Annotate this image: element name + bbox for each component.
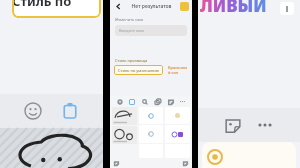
staticText: Стиль по умолчанию — [118, 68, 159, 73]
button[interactable]: Packs — [152, 96, 163, 107]
button[interactable]: Стиль по умолчанию — [118, 65, 159, 75]
button[interactable]: Back — [113, 1, 123, 11]
staticText: Изменить имя — [115, 17, 144, 22]
staticText: ЛИВЫЙ МИК — [200, 0, 280, 16]
button[interactable]: More — [254, 114, 276, 136]
button[interactable]: Sticker preview — [112, 107, 137, 125]
button[interactable]: Stickers — [126, 96, 137, 107]
button[interactable] — [202, 142, 296, 168]
staticText: Стиль прозвища — [115, 58, 148, 63]
button[interactable]: Sticker — [139, 125, 163, 143]
button[interactable]: Sticker — [165, 125, 190, 143]
button[interactable]: Delete — [182, 160, 189, 167]
button[interactable]: Settings — [113, 160, 120, 167]
button[interactable]: Emoji — [114, 96, 125, 107]
button[interactable]: Search — [139, 96, 150, 107]
button[interactable]: Confirm — [180, 2, 189, 11]
button[interactable]: Sticker preview — [112, 126, 137, 144]
button[interactable]: Stickers — [59, 100, 81, 122]
button[interactable]: More options — [280, 2, 294, 15]
button[interactable]: Recent — [165, 96, 176, 107]
staticText: Нет результатов — [123, 3, 180, 10]
button[interactable]: Sticker — [165, 107, 190, 124]
staticText: Стиль по умол — [12, 0, 101, 18]
staticText: Введите имя — [119, 28, 144, 33]
button[interactable]: More — [177, 96, 188, 107]
button[interactable]: Stickers — [222, 114, 244, 136]
button[interactable]: Красочный сон — [168, 65, 188, 75]
button[interactable]: Emoji — [22, 100, 44, 122]
button[interactable]: Sticker — [139, 107, 163, 124]
button[interactable]: Введите имя — [115, 25, 187, 36]
staticText: Красочный сон — [168, 65, 188, 75]
button[interactable]: Стиль по умол — [12, 0, 101, 18]
